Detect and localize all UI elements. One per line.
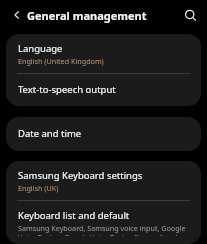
staticText: Text-to-speech output	[18, 83, 116, 96]
button[interactable]: Keyboard list and default	[6, 201, 201, 244]
button[interactable]: Date and time	[6, 117, 201, 151]
button[interactable]: Language	[6, 34, 201, 73]
button[interactable]: Text-to-speech output	[6, 74, 201, 106]
staticText: Samsung Keyboard, Samsung voice input, G…	[18, 223, 189, 236]
button[interactable]: Samsung Keyboard settings	[6, 161, 201, 200]
staticText: English (UK)	[18, 183, 59, 193]
staticText: Language	[18, 42, 63, 55]
staticText: General management	[27, 8, 147, 23]
staticText: Samsung Keyboard settings	[18, 169, 143, 182]
staticText: English (United Kingdom)	[18, 56, 104, 66]
button[interactable]: Search	[179, 4, 201, 26]
staticText: Date and time	[18, 127, 82, 140]
staticText: Keyboard list and default	[18, 209, 130, 222]
button[interactable]: Back	[6, 4, 28, 26]
